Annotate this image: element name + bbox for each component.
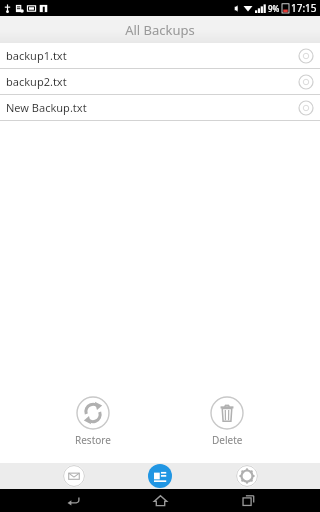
staticText: New Backup.txt bbox=[6, 100, 298, 115]
button[interactable]: backup1.txt bbox=[0, 43, 320, 69]
other: Select backup1.txt bbox=[298, 48, 314, 64]
button[interactable]: New Backup.txt bbox=[0, 95, 320, 121]
staticText: Delete bbox=[212, 433, 243, 447]
button[interactable]: Home bbox=[145, 489, 175, 512]
button[interactable]: Restore bbox=[53, 394, 133, 449]
staticText: backup1.txt bbox=[6, 48, 298, 63]
button[interactable]: Email bbox=[62, 464, 86, 488]
button[interactable]: backup2.txt bbox=[0, 69, 320, 95]
button[interactable]: Settings bbox=[235, 464, 259, 488]
staticText: All Backups bbox=[125, 21, 195, 39]
button[interactable]: Back bbox=[58, 489, 88, 512]
staticText: backup2.txt bbox=[6, 74, 298, 89]
button[interactable]: Delete bbox=[187, 394, 267, 449]
other: Select backup2.txt bbox=[298, 74, 314, 90]
button[interactable]: Recent apps bbox=[233, 489, 263, 512]
other: Select New Backup.txt bbox=[298, 100, 314, 116]
staticText: 17:15 bbox=[291, 1, 317, 15]
staticText: 9% bbox=[268, 3, 280, 14]
staticText: Restore bbox=[75, 433, 111, 447]
button[interactable]: Backups bbox=[147, 463, 173, 489]
